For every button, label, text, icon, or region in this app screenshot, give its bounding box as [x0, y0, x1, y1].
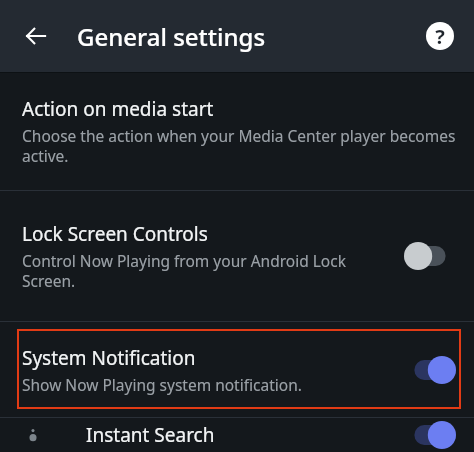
button[interactable]: Lock Screen Controls	[0, 191, 474, 321]
staticText: Action on media start	[22, 96, 214, 122]
button[interactable]: Instant Search	[0, 418, 474, 452]
button[interactable]: Back	[12, 12, 60, 60]
staticText: ?	[435, 23, 445, 50]
staticText: Control Now Playing from your Android Lo…	[22, 250, 392, 292]
button[interactable]: Help	[416, 12, 464, 60]
staticText: Choose the action when your Media Center…	[22, 125, 456, 167]
staticText: Instant Search	[86, 422, 215, 448]
button[interactable]: Toggle on	[404, 355, 456, 385]
staticText: Show Now Playing system notification.	[22, 374, 302, 395]
staticText: General settings	[77, 20, 266, 53]
button[interactable]: Toggle on	[404, 420, 456, 450]
staticText: Lock Screen Controls	[22, 221, 208, 247]
staticText: System Notification	[22, 345, 196, 371]
button[interactable]: Action on media start	[0, 73, 474, 190]
button[interactable]: Toggle off	[404, 241, 456, 271]
button[interactable]: System Notification	[0, 322, 474, 417]
